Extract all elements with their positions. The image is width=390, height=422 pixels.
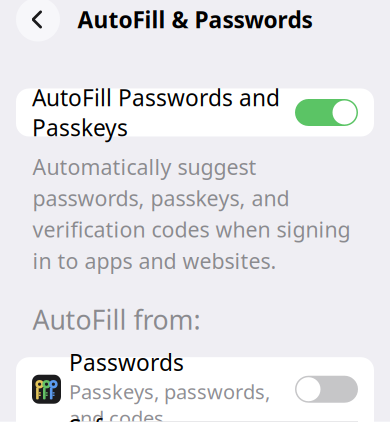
staticText: Automatically suggest passwords, passkey… — [32, 152, 350, 275]
staticText: Passwords — [69, 347, 184, 377]
button[interactable]: AutoFill Passwords and Passkeys — [16, 88, 374, 136]
staticText: Passkeys, passwords, and codes — [69, 378, 270, 422]
button[interactable]: Passwords — [16, 357, 374, 421]
staticText: AutoFill from: — [32, 302, 200, 337]
staticText: Safe — [69, 412, 115, 422]
staticText: AutoFill & Passwords — [77, 4, 312, 34]
staticText: AutoFill Passwords and Passkeys — [32, 82, 280, 143]
button[interactable]: Back — [16, 0, 60, 41]
